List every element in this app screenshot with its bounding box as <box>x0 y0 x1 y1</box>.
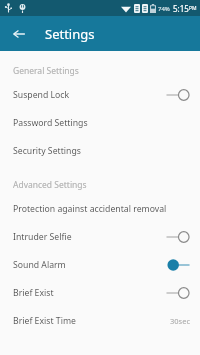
staticText: Suspend Lock <box>13 89 70 101</box>
staticText: 74% <box>158 5 170 13</box>
staticText: Password Settings <box>13 117 88 129</box>
button[interactable]: Intruder Selfie <box>0 223 200 251</box>
staticText: 30sec <box>169 316 190 326</box>
staticText: 5:15 <box>173 3 189 14</box>
staticText: General Settings <box>13 65 79 77</box>
button[interactable]: Protection against accidental removal <box>0 195 200 223</box>
staticText: Sound Alarm <box>13 259 66 271</box>
staticText: Security Settings <box>13 145 81 157</box>
staticText: Brief Exist Time <box>13 315 76 327</box>
staticText: Brief Exist <box>13 287 54 299</box>
button[interactable]: Sound Alarm <box>0 251 200 279</box>
button[interactable]: Password Settings <box>0 109 200 137</box>
button[interactable]: Brief Exist <box>0 279 200 307</box>
button[interactable]: Suspend Lock <box>0 81 200 109</box>
staticText: Intruder Selfie <box>13 231 72 243</box>
button[interactable]: Toggle off <box>166 285 190 301</box>
button[interactable]: Toggle on <box>166 257 190 273</box>
button[interactable]: Toggle off <box>166 229 190 245</box>
staticText: Settings <box>45 25 95 43</box>
staticText: PM <box>189 5 197 12</box>
staticText: Protection against accidental removal <box>13 203 167 215</box>
staticText: Advanced Settings <box>13 179 87 191</box>
button[interactable]: Toggle off <box>166 87 190 103</box>
button[interactable]: Security Settings <box>0 137 200 165</box>
button[interactable]: Brief Exist Time <box>0 307 200 335</box>
button[interactable]: Back <box>7 22 30 45</box>
